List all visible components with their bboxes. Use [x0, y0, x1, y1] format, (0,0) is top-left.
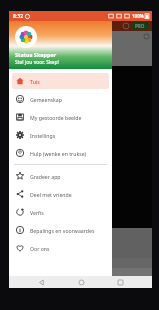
staticText: IE. [12, 91, 22, 102]
staticText: Instellings [30, 132, 56, 139]
button[interactable]: Hulp (wenke en trukse) [12, 145, 109, 161]
button[interactable]: Gemeenskap [12, 91, 109, 107]
staticText: Verfis [30, 209, 44, 216]
staticText: Hulp (wenke en trukse) [30, 150, 87, 157]
button[interactable]: Back [34, 276, 48, 288]
button[interactable]: Verfis [12, 204, 109, 220]
button[interactable]: Home [74, 276, 88, 288]
staticText: …oruik wo… [12, 41, 38, 47]
button[interactable]: Bepalings en voorwaardes [12, 222, 109, 238]
staticText: Deel met vriende [30, 191, 72, 198]
staticText: PRO [135, 23, 145, 29]
staticText: RVARING [12, 80, 49, 91]
button[interactable]: Deel met vriende [12, 186, 109, 202]
button[interactable]: Instellings [12, 127, 109, 143]
button[interactable]: Oor ons [12, 240, 109, 256]
staticText: Gemeenskap [30, 96, 62, 103]
staticText: My gestoorde beelde [30, 114, 82, 121]
button[interactable]: Tuis [12, 73, 109, 89]
staticText: Status Skepper [15, 51, 57, 58]
staticText: Bepalings en voorwaardes [30, 227, 95, 234]
staticText: Oor ons [30, 245, 50, 252]
button[interactable]: Gradeer app [12, 168, 109, 184]
staticText: Stel jou voor. Skep! [15, 59, 59, 66]
staticText: 8:32 [13, 13, 23, 20]
staticText: Tuis [30, 78, 40, 85]
button[interactable]: My gestoorde beelde [12, 109, 109, 125]
staticText: Gradeer app [30, 173, 61, 180]
button[interactable]: Recents [113, 276, 127, 288]
staticText: 100% [132, 13, 144, 19]
